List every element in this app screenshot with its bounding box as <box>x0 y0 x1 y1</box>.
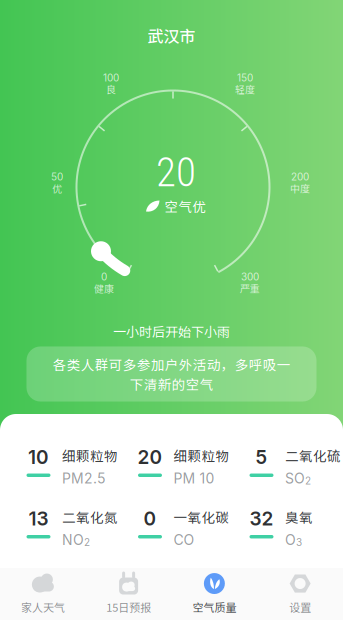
staticText: 空气质量 <box>192 599 236 615</box>
staticText: O <box>285 531 296 548</box>
button[interactable]: 家人天气 <box>0 565 86 620</box>
staticText: 100 <box>103 72 119 84</box>
staticText: 细颗粒物 <box>62 445 118 465</box>
staticText: 200 <box>291 171 309 183</box>
staticText: 3 <box>296 536 302 548</box>
staticText: 臭氧 <box>285 507 313 526</box>
staticText: 家人天气 <box>21 599 65 615</box>
staticText: 武汉市 <box>147 24 195 47</box>
staticText: SO <box>285 470 305 487</box>
button[interactable]: 设置 <box>257 565 343 620</box>
staticText: 优 <box>52 181 62 195</box>
staticText: 二氧化氮 <box>62 507 118 526</box>
staticText: 空气优 <box>164 196 206 216</box>
staticText: 5 <box>255 445 267 468</box>
staticText: 2 <box>305 475 311 487</box>
staticText: 20 <box>156 148 196 196</box>
staticText: 各类人群可多参加户外活动，多呼吸一下清新的空气 <box>52 354 290 394</box>
staticText: 中度 <box>290 181 310 195</box>
staticText: 0 <box>101 271 107 283</box>
staticText: 良 <box>106 82 116 96</box>
staticText: NO <box>62 531 84 548</box>
staticText: 健康 <box>94 281 114 295</box>
button[interactable]: 15日预报 <box>86 565 172 620</box>
staticText: 一小时后开始下小雨 <box>113 322 230 340</box>
staticText: 轻度 <box>235 82 255 96</box>
staticText: 20 <box>137 445 162 468</box>
button[interactable]: 武汉市 <box>133 0 209 47</box>
staticText: 15日预报 <box>106 599 151 615</box>
staticText: 0 <box>143 507 156 530</box>
staticText: 设置 <box>289 599 311 615</box>
staticText: 严重 <box>240 281 260 295</box>
staticText: 32 <box>249 507 273 530</box>
staticText: 一氧化碳 <box>173 507 229 526</box>
staticText: 细颗粒物 <box>173 445 229 465</box>
staticText: CO <box>173 531 194 548</box>
staticText: PM 10 <box>173 470 214 487</box>
button[interactable]: 空气质量 <box>171 565 257 620</box>
staticText: 13 <box>28 507 48 530</box>
staticText: 300 <box>241 271 259 283</box>
staticText: 2 <box>84 536 90 548</box>
staticText: 二氧化硫 <box>285 445 341 465</box>
staticText: 150 <box>237 72 253 84</box>
staticText: PM2.5 <box>62 470 106 487</box>
staticText: 50 <box>51 171 63 183</box>
staticText: 10 <box>28 445 49 468</box>
